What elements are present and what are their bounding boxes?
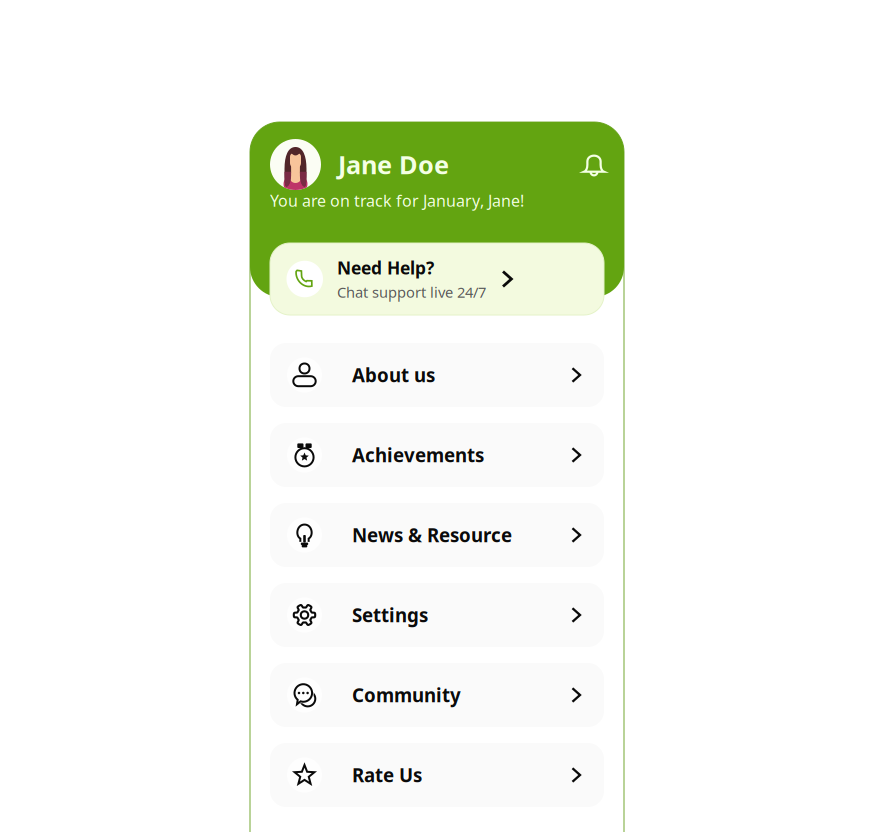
staticText: Jane Doe xyxy=(338,148,449,181)
staticText: About us xyxy=(352,363,435,387)
button[interactable]: Achievements xyxy=(270,423,604,487)
button[interactable]: Settings xyxy=(270,583,604,647)
button[interactable]: Community xyxy=(270,663,604,727)
staticText: Chat support live 24/7 xyxy=(337,282,486,302)
staticText: You are on track for January, Jane! xyxy=(270,190,524,211)
button[interactable]: Rate Us xyxy=(270,743,604,807)
button[interactable]: News & Resource xyxy=(270,503,604,567)
staticText: Settings xyxy=(352,603,428,627)
button[interactable]: About us xyxy=(270,343,604,407)
staticText: Community xyxy=(352,683,461,707)
staticText: Achievements xyxy=(352,443,484,467)
staticText: Need Help? xyxy=(337,256,434,279)
button[interactable]: Notifications xyxy=(582,152,606,176)
button[interactable]: Need Help? xyxy=(270,243,604,315)
staticText: News & Resource xyxy=(352,523,512,547)
staticText: Rate Us xyxy=(352,763,422,787)
